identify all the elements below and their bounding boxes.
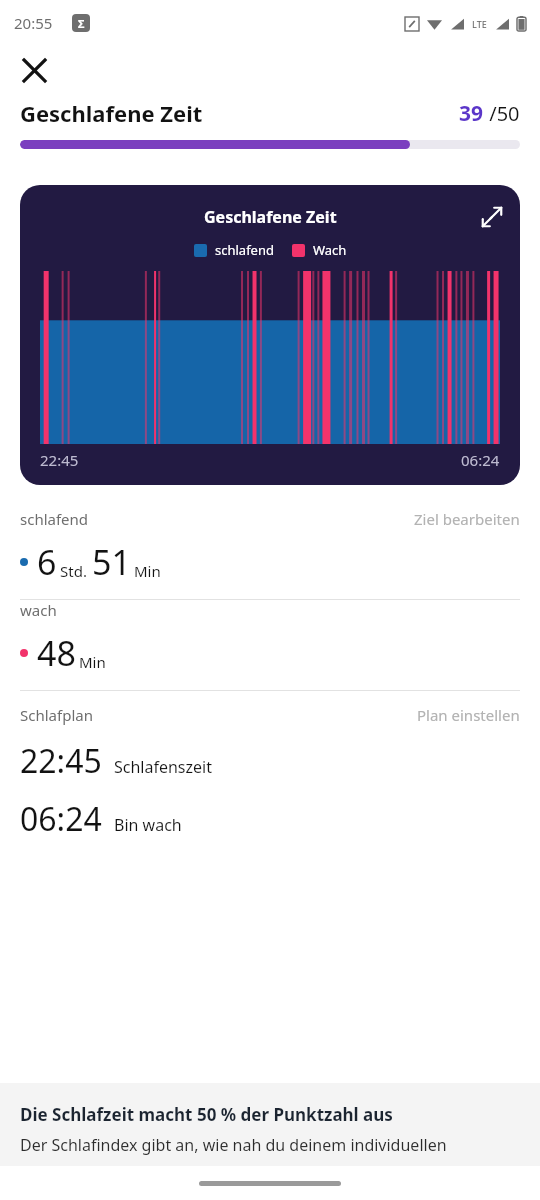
- button[interactable]: Die Schlafzeit macht 50 % der Punktzahl …: [0, 1083, 540, 1166]
- staticText: Std.: [60, 561, 87, 581]
- staticText: schlafend: [20, 509, 89, 529]
- staticText: Wach: [313, 241, 347, 259]
- staticText: Bin wach: [114, 814, 182, 836]
- staticText: Min: [134, 561, 161, 581]
- staticText: Geschlafene Zeit: [204, 206, 337, 228]
- staticText: wach: [20, 600, 57, 620]
- staticText: 06:24: [20, 797, 102, 841]
- staticText: Ziel bearbeiten: [414, 509, 520, 529]
- staticText: 06:24: [461, 450, 500, 470]
- staticText: Schlafenszeit: [114, 756, 212, 778]
- staticText: 48: [37, 630, 76, 676]
- staticText: Σ: [78, 16, 85, 31]
- staticText: 20:55: [14, 13, 53, 33]
- button[interactable]: Schließen: [10, 46, 58, 94]
- button[interactable]: wach: [0, 600, 540, 690]
- staticText: Geschlafene Zeit: [20, 98, 203, 128]
- staticText: 22:45: [40, 450, 79, 470]
- staticText: Die Schlafzeit macht 50 % der Punktzahl …: [20, 1103, 393, 1126]
- staticText: Min: [79, 652, 106, 672]
- button[interactable]: Plan einstellen: [417, 705, 520, 725]
- staticText: 22:45: [20, 739, 102, 783]
- button[interactable]: Ziel bearbeiten: [414, 509, 520, 529]
- staticText: 6: [37, 539, 57, 585]
- button[interactable]: Schlafplan: [0, 691, 540, 857]
- staticText: Plan einstellen: [417, 705, 520, 725]
- staticText: schlafend: [215, 241, 274, 259]
- staticText: 39: [459, 99, 484, 128]
- staticText: 51: [92, 539, 131, 585]
- staticText: Schlafplan: [20, 705, 93, 725]
- button[interactable]: Vollbild: [474, 199, 510, 235]
- staticText: LTE: [472, 18, 487, 30]
- button[interactable]: schlafend: [0, 509, 540, 599]
- staticText: Der Schlafindex gibt an, wie nah du dein…: [20, 1134, 447, 1156]
- staticText: /50: [484, 100, 520, 127]
- button[interactable]: Geschlafene Zeit: [20, 185, 520, 485]
